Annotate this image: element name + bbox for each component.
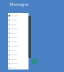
- button[interactable]: [8, 14, 28, 18]
- button[interactable]: [8, 27, 28, 31]
- staticText: Messages: [9, 2, 28, 7]
- button[interactable]: [8, 48, 28, 53]
- button[interactable]: [8, 31, 28, 35]
- button[interactable]: [8, 18, 28, 22]
- button[interactable]: [8, 57, 28, 61]
- button[interactable]: [8, 22, 28, 27]
- button[interactable]: [8, 61, 28, 66]
- button[interactable]: Compose: [31, 58, 37, 65]
- button[interactable]: [8, 35, 28, 40]
- button[interactable]: [8, 53, 28, 57]
- button[interactable]: [8, 40, 28, 44]
- button[interactable]: [8, 44, 28, 48]
- button[interactable]: [8, 66, 28, 70]
